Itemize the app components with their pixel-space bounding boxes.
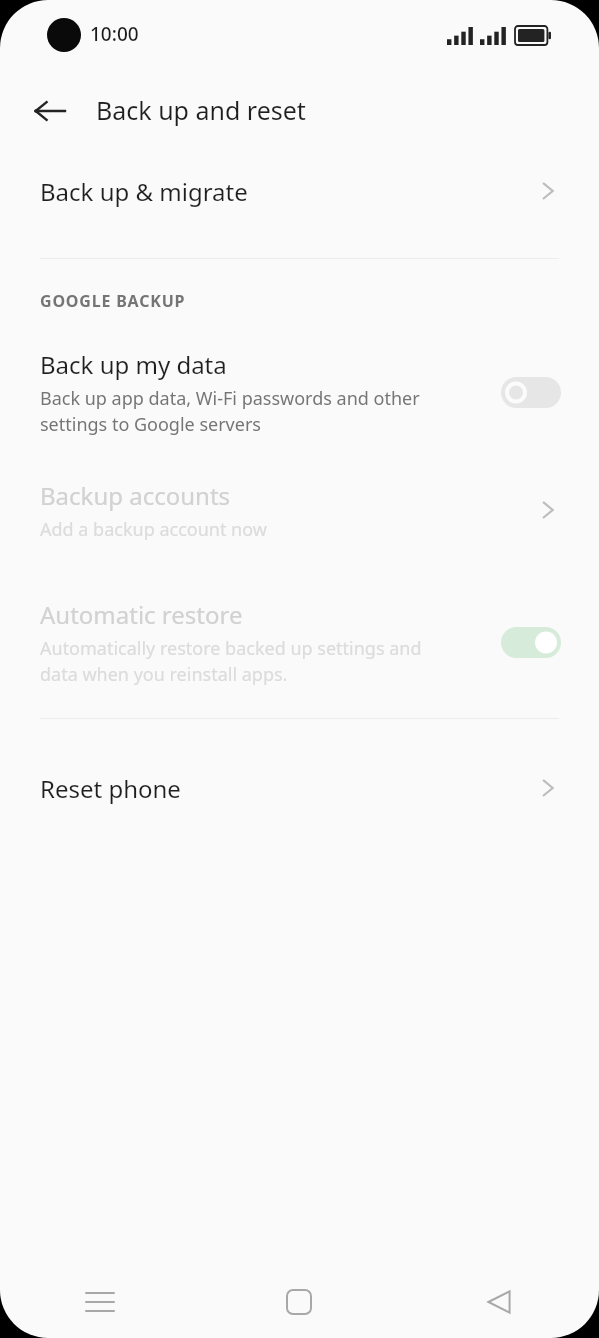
staticText: Back up app data, Wi-Fi passwords and ot… <box>40 386 420 437</box>
staticText: Add a backup account now <box>40 517 267 542</box>
staticText: 10:00 <box>90 21 139 47</box>
button[interactable]: Toggle off <box>501 377 561 408</box>
button[interactable]: Recent apps <box>0 1266 199 1338</box>
staticText: GOOGLE BACKUP <box>40 290 186 312</box>
staticText: Back up my data <box>40 348 227 381</box>
staticText: Backup accounts <box>40 479 231 512</box>
button[interactable]: Reset phone <box>0 752 599 824</box>
staticText: Automatic restore <box>40 598 243 631</box>
button[interactable]: Toggle on <box>501 627 561 658</box>
button[interactable]: Home <box>199 1266 399 1338</box>
staticText: Automatically restore backed up settings… <box>40 636 422 687</box>
button[interactable]: Back <box>22 83 78 139</box>
button[interactable]: Back <box>399 1266 599 1338</box>
staticText: Reset phone <box>40 772 181 805</box>
staticText: Back up and reset <box>96 93 306 127</box>
staticText: Back up & migrate <box>40 175 248 208</box>
button[interactable]: Automatic restore <box>0 588 599 696</box>
button[interactable]: Back up & migrate <box>0 152 599 230</box>
button[interactable]: Back up my data <box>0 338 599 446</box>
button[interactable]: Backup accounts <box>0 468 599 552</box>
